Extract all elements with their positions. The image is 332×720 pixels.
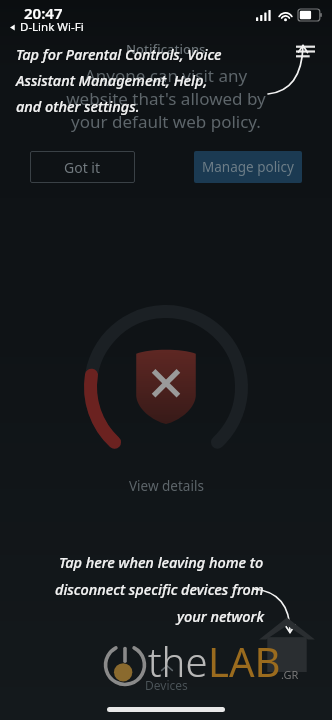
- staticText: D-Link Wi-Fi: [20, 19, 84, 35]
- button[interactable]: Devices: [145, 664, 188, 693]
- staticText: and other settings.: [16, 96, 140, 116]
- staticText: Devices: [145, 677, 188, 693]
- staticText: Notifications: [126, 40, 206, 58]
- staticText: the: [148, 634, 208, 688]
- button[interactable]: [82, 303, 250, 471]
- button[interactable]: View details: [117, 473, 216, 499]
- staticText: Manage policy: [202, 158, 294, 176]
- button[interactable]: Menu: [288, 38, 322, 64]
- staticText: Tap for Parental Controls, Voice: [16, 44, 222, 64]
- staticText: 20:47: [24, 3, 63, 23]
- button[interactable]: Got it: [30, 151, 135, 183]
- staticText: View details: [129, 477, 204, 495]
- staticText: Got it: [64, 158, 101, 177]
- staticText: Anyone can visit any website that's allo…: [66, 64, 266, 133]
- staticText: Tap here when leaving home to: [59, 552, 264, 572]
- button[interactable]: Manage policy: [194, 151, 302, 183]
- staticText: your network: [177, 606, 264, 626]
- staticText: Assistant Management, Help,: [16, 70, 208, 90]
- staticText: disconnect specific devices from: [55, 579, 264, 599]
- staticText: .GR: [281, 667, 299, 682]
- staticText: LAB: [208, 634, 281, 688]
